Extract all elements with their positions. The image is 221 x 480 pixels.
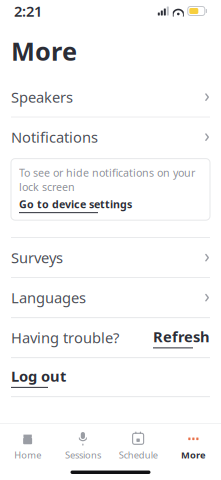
button[interactable]: Home <box>0 425 55 461</box>
staticText: Languages <box>11 288 86 307</box>
staticText: To see or hide notifications on your loc… <box>19 166 195 194</box>
button[interactable]: Log out <box>11 366 66 388</box>
staticText: Surveys <box>11 248 63 267</box>
staticText: More <box>11 34 77 68</box>
button[interactable]: More <box>166 425 221 461</box>
staticText: Go to device settings <box>19 197 132 211</box>
staticText: Sessions <box>65 449 101 461</box>
staticText: 2:21 <box>14 1 42 21</box>
button[interactable]: Sessions <box>55 425 110 461</box>
staticText: Speakers <box>11 87 73 107</box>
staticText: Schedule <box>119 449 158 461</box>
staticText: Log out <box>11 366 66 386</box>
button[interactable]: Speakers <box>0 78 221 117</box>
button[interactable]: Notifications <box>0 118 221 157</box>
staticText: Home <box>14 449 41 461</box>
staticText: Refresh <box>153 327 210 346</box>
button[interactable]: Languages <box>0 278 221 317</box>
staticText: Having trouble? <box>11 328 119 347</box>
staticText: Notifications <box>11 127 98 147</box>
button[interactable]: Schedule <box>110 425 166 461</box>
button[interactable]: Surveys <box>0 238 221 277</box>
button[interactable]: Go to device settings <box>19 197 132 213</box>
button[interactable]: Refresh <box>153 327 210 348</box>
staticText: More <box>181 449 206 461</box>
